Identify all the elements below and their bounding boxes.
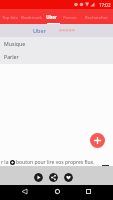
button[interactable]: Favori	[64, 173, 73, 182]
staticText: Parler	[4, 53, 19, 60]
button[interactable]: Rechercher	[79, 9, 113, 24]
staticText: Uber	[46, 14, 57, 20]
staticText: Uber	[33, 27, 46, 34]
staticText: Top hits	[2, 14, 18, 20]
button[interactable]: Parler	[0, 50, 113, 63]
button[interactable]: Accueil	[52, 186, 63, 197]
staticText: Rechercher	[85, 14, 108, 20]
staticText: 17:02	[99, 2, 111, 8]
button[interactable]: Retour	[19, 186, 30, 197]
staticText: Bookmark	[21, 14, 42, 20]
button[interactable]: Forum	[60, 9, 79, 24]
staticText: Forum	[63, 14, 77, 20]
staticText: bouton pour lire vos propres flux.	[16, 159, 95, 166]
staticText: r la	[1, 159, 9, 166]
button[interactable]: Lire	[34, 173, 43, 182]
button[interactable]: Bookmark	[20, 9, 43, 24]
button[interactable]: Musique	[0, 37, 113, 50]
staticText: Musique	[4, 40, 26, 47]
button[interactable]: Partager	[49, 173, 58, 182]
button[interactable]: Uber	[43, 9, 60, 24]
button[interactable]: Top hits	[0, 9, 20, 24]
button[interactable]: Ajouter un flux	[90, 133, 105, 148]
button[interactable]: Applications recentes	[83, 186, 94, 197]
button[interactable]: OK	[102, 165, 109, 167]
